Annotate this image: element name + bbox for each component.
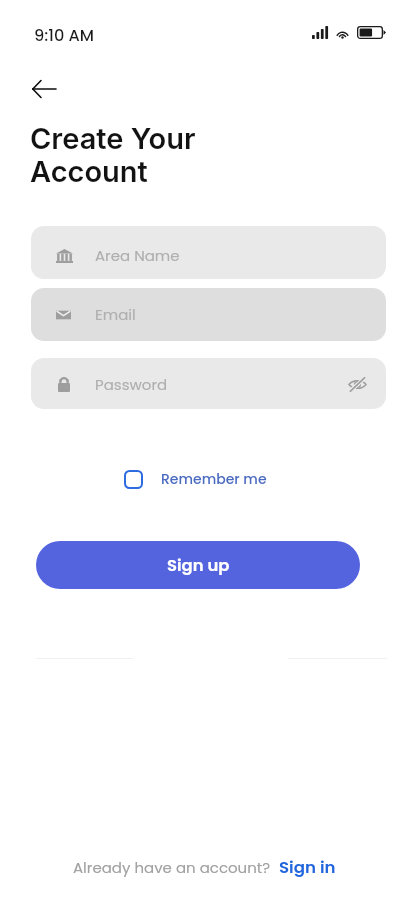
staticText: 9:10 AM (34, 24, 95, 47)
button[interactable]: Remember me (120, 465, 271, 493)
button[interactable]: Toggle password visibility (344, 371, 370, 397)
button[interactable]: Sign in (279, 856, 336, 879)
staticText: Area Name (95, 245, 180, 266)
button[interactable]: Password (31, 358, 386, 409)
button[interactable]: Area Name (31, 226, 386, 279)
button[interactable]: Back (21, 75, 67, 102)
staticText: Password (95, 374, 168, 395)
staticText: Remember me (161, 469, 267, 489)
staticText: Already have an account? (73, 857, 271, 878)
staticText: Email (95, 304, 136, 325)
staticText: Create Your Account (30, 121, 196, 189)
button[interactable]: Email (31, 288, 386, 341)
button[interactable]: Sign up (36, 541, 360, 589)
staticText: Sign up (167, 554, 230, 577)
staticText: Sign in (279, 856, 336, 879)
